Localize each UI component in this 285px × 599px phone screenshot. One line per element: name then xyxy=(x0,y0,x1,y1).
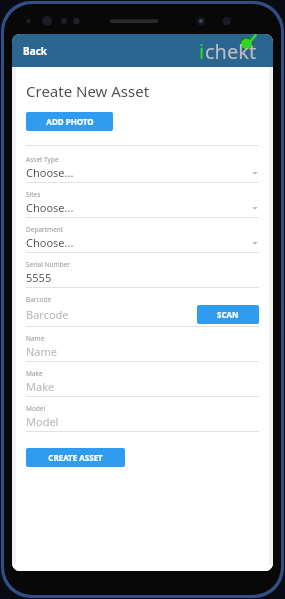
staticText: Choose... xyxy=(26,200,251,215)
button[interactable]: Serial Number xyxy=(26,260,259,295)
staticText: Make xyxy=(26,379,55,394)
staticText: Choose... xyxy=(26,165,251,180)
staticText: Name xyxy=(26,334,45,343)
staticText: Serial Number xyxy=(26,260,70,269)
staticText: Make xyxy=(26,369,43,378)
staticText: ADD PHOTO xyxy=(46,116,94,127)
staticText: CREATE ASSET xyxy=(48,452,103,463)
staticText: Department xyxy=(26,225,64,234)
staticText: Create New Asset xyxy=(26,81,150,101)
button[interactable]: Model xyxy=(26,404,259,439)
button[interactable]: Make xyxy=(26,369,259,404)
staticText: Choose... xyxy=(26,235,251,250)
staticText: Model xyxy=(26,404,46,413)
button[interactable]: Sites xyxy=(26,190,259,225)
button[interactable]: CREATE ASSET xyxy=(26,448,125,467)
staticText: 5555 xyxy=(26,270,52,285)
button[interactable]: ADD PHOTO xyxy=(26,112,113,131)
staticText: Barcode xyxy=(26,307,197,322)
button[interactable]: SCAN xyxy=(197,305,259,324)
staticText: Name xyxy=(26,344,58,359)
button[interactable]: Asset Type xyxy=(26,155,259,190)
staticText: Sites xyxy=(26,190,41,199)
staticText: Asset Type xyxy=(26,155,59,164)
button[interactable]: Back xyxy=(18,40,52,62)
staticText: SCAN xyxy=(217,309,239,320)
staticText: Model xyxy=(26,414,59,429)
button[interactable]: Name xyxy=(26,334,259,369)
staticText: Barcode xyxy=(26,295,52,304)
staticText: Back xyxy=(23,44,47,58)
button[interactable]: Department xyxy=(26,225,259,260)
staticText: i xyxy=(199,38,205,65)
staticText: chekt xyxy=(205,38,257,65)
